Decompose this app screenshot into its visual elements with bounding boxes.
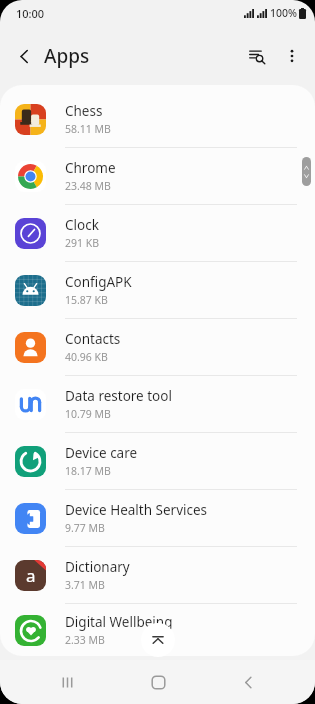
- button[interactable]: Search and sort: [239, 38, 275, 74]
- button[interactable]: Data restore tool: [0, 376, 315, 432]
- button[interactable]: Scroll to top: [141, 623, 175, 657]
- staticText: 10:00: [16, 6, 45, 21]
- staticText: Data restore tool: [65, 387, 172, 405]
- staticText: 10.79 MB: [65, 407, 111, 421]
- button[interactable]: Home: [134, 660, 182, 704]
- button[interactable]: Device Health Services: [0, 490, 315, 546]
- staticText: Chrome: [65, 159, 116, 177]
- staticText: Device care: [65, 444, 138, 462]
- staticText: 291 KB: [65, 236, 100, 250]
- staticText: ConfigAPK: [65, 273, 132, 291]
- button[interactable]: Back: [6, 38, 42, 74]
- staticText: 100%: [270, 6, 297, 20]
- staticText: 40.96 KB: [65, 350, 108, 364]
- button[interactable]: a: [0, 547, 315, 603]
- staticText: Chess: [65, 102, 103, 120]
- button[interactable]: Device care: [0, 433, 315, 489]
- staticText: Contacts: [65, 330, 121, 348]
- staticText: Device Health Services: [65, 501, 208, 519]
- staticText: 9.77 MB: [65, 521, 105, 535]
- staticText: a: [26, 564, 36, 587]
- button[interactable]: Back: [224, 660, 272, 704]
- staticText: 2.33 MB: [65, 633, 105, 647]
- staticText: Clock: [65, 216, 99, 234]
- button[interactable]: Contacts: [0, 319, 315, 375]
- button[interactable]: Chrome: [0, 148, 315, 204]
- staticText: 18.17 MB: [65, 464, 111, 478]
- button[interactable]: Digital Wellbeing: [0, 604, 315, 656]
- staticText: Digital Wellbeing: [65, 613, 173, 631]
- button[interactable]: Clock: [0, 205, 315, 261]
- button[interactable]: ConfigAPK: [0, 262, 315, 318]
- staticText: Apps: [44, 43, 90, 69]
- button[interactable]: Recents: [43, 660, 91, 704]
- staticText: 23.48 MB: [65, 179, 111, 193]
- staticText: 3.71 MB: [65, 578, 105, 592]
- staticText: Dictionary: [65, 558, 130, 576]
- button[interactable]: More options: [275, 39, 309, 73]
- staticText: 58.11 MB: [65, 122, 111, 136]
- button[interactable]: Chess: [0, 91, 315, 147]
- staticText: 15.87 KB: [65, 293, 108, 307]
